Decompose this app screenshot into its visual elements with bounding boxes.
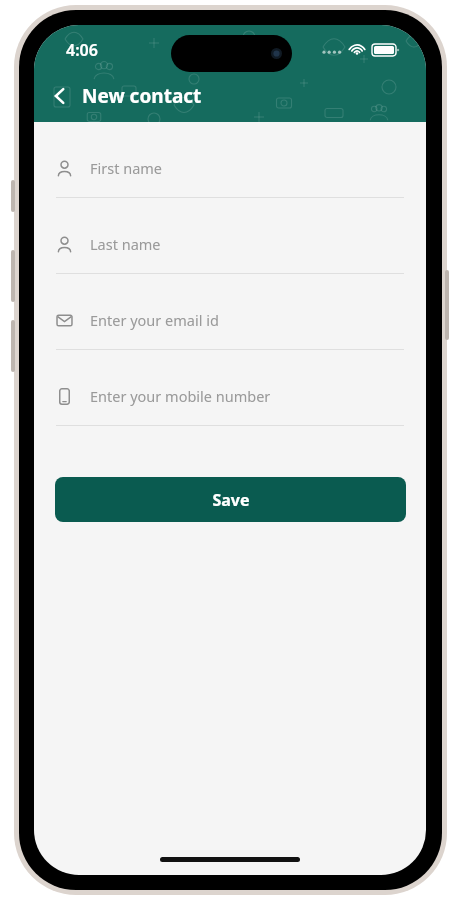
staticText: 4:06 [66, 39, 98, 61]
button[interactable]: Back [42, 78, 78, 114]
staticText: Last name [90, 234, 161, 254]
button[interactable]: Last name [34, 215, 426, 291]
button[interactable]: Save [55, 477, 406, 522]
button[interactable]: First name [34, 139, 426, 215]
staticText: New contact [82, 83, 202, 109]
staticText: Save [212, 489, 250, 511]
staticText: First name [90, 158, 163, 178]
staticText: Enter your mobile number [90, 386, 271, 406]
button[interactable]: Enter your mobile number [34, 367, 426, 443]
staticText: Enter your email id [90, 310, 219, 330]
button[interactable]: Enter your email id [34, 291, 426, 367]
